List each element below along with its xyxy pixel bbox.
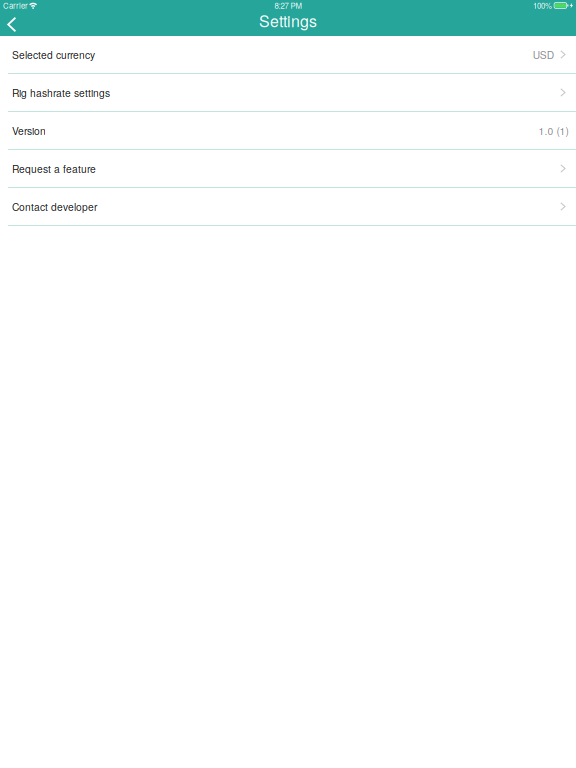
button[interactable]: Request a feature [0, 150, 576, 188]
button[interactable]: Selected currency [0, 36, 576, 74]
staticText: Version [12, 123, 46, 138]
button[interactable]: Back [0, 12, 24, 37]
staticText: 100% [533, 0, 552, 11]
staticText: Rig hashrate settings [12, 85, 110, 100]
staticText: Contact developer [12, 199, 97, 214]
staticText: Carrier [3, 0, 28, 11]
staticText: 1.0 (1) [538, 123, 568, 138]
button[interactable]: Version [0, 112, 576, 150]
button[interactable]: Contact developer [0, 188, 576, 226]
staticText: USD [533, 47, 554, 62]
staticText: Request a feature [12, 161, 96, 176]
staticText: Selected currency [12, 47, 95, 62]
staticText: Settings [259, 9, 317, 32]
button[interactable]: Rig hashrate settings [0, 74, 576, 112]
staticText: 8:27 PM [274, 0, 301, 11]
